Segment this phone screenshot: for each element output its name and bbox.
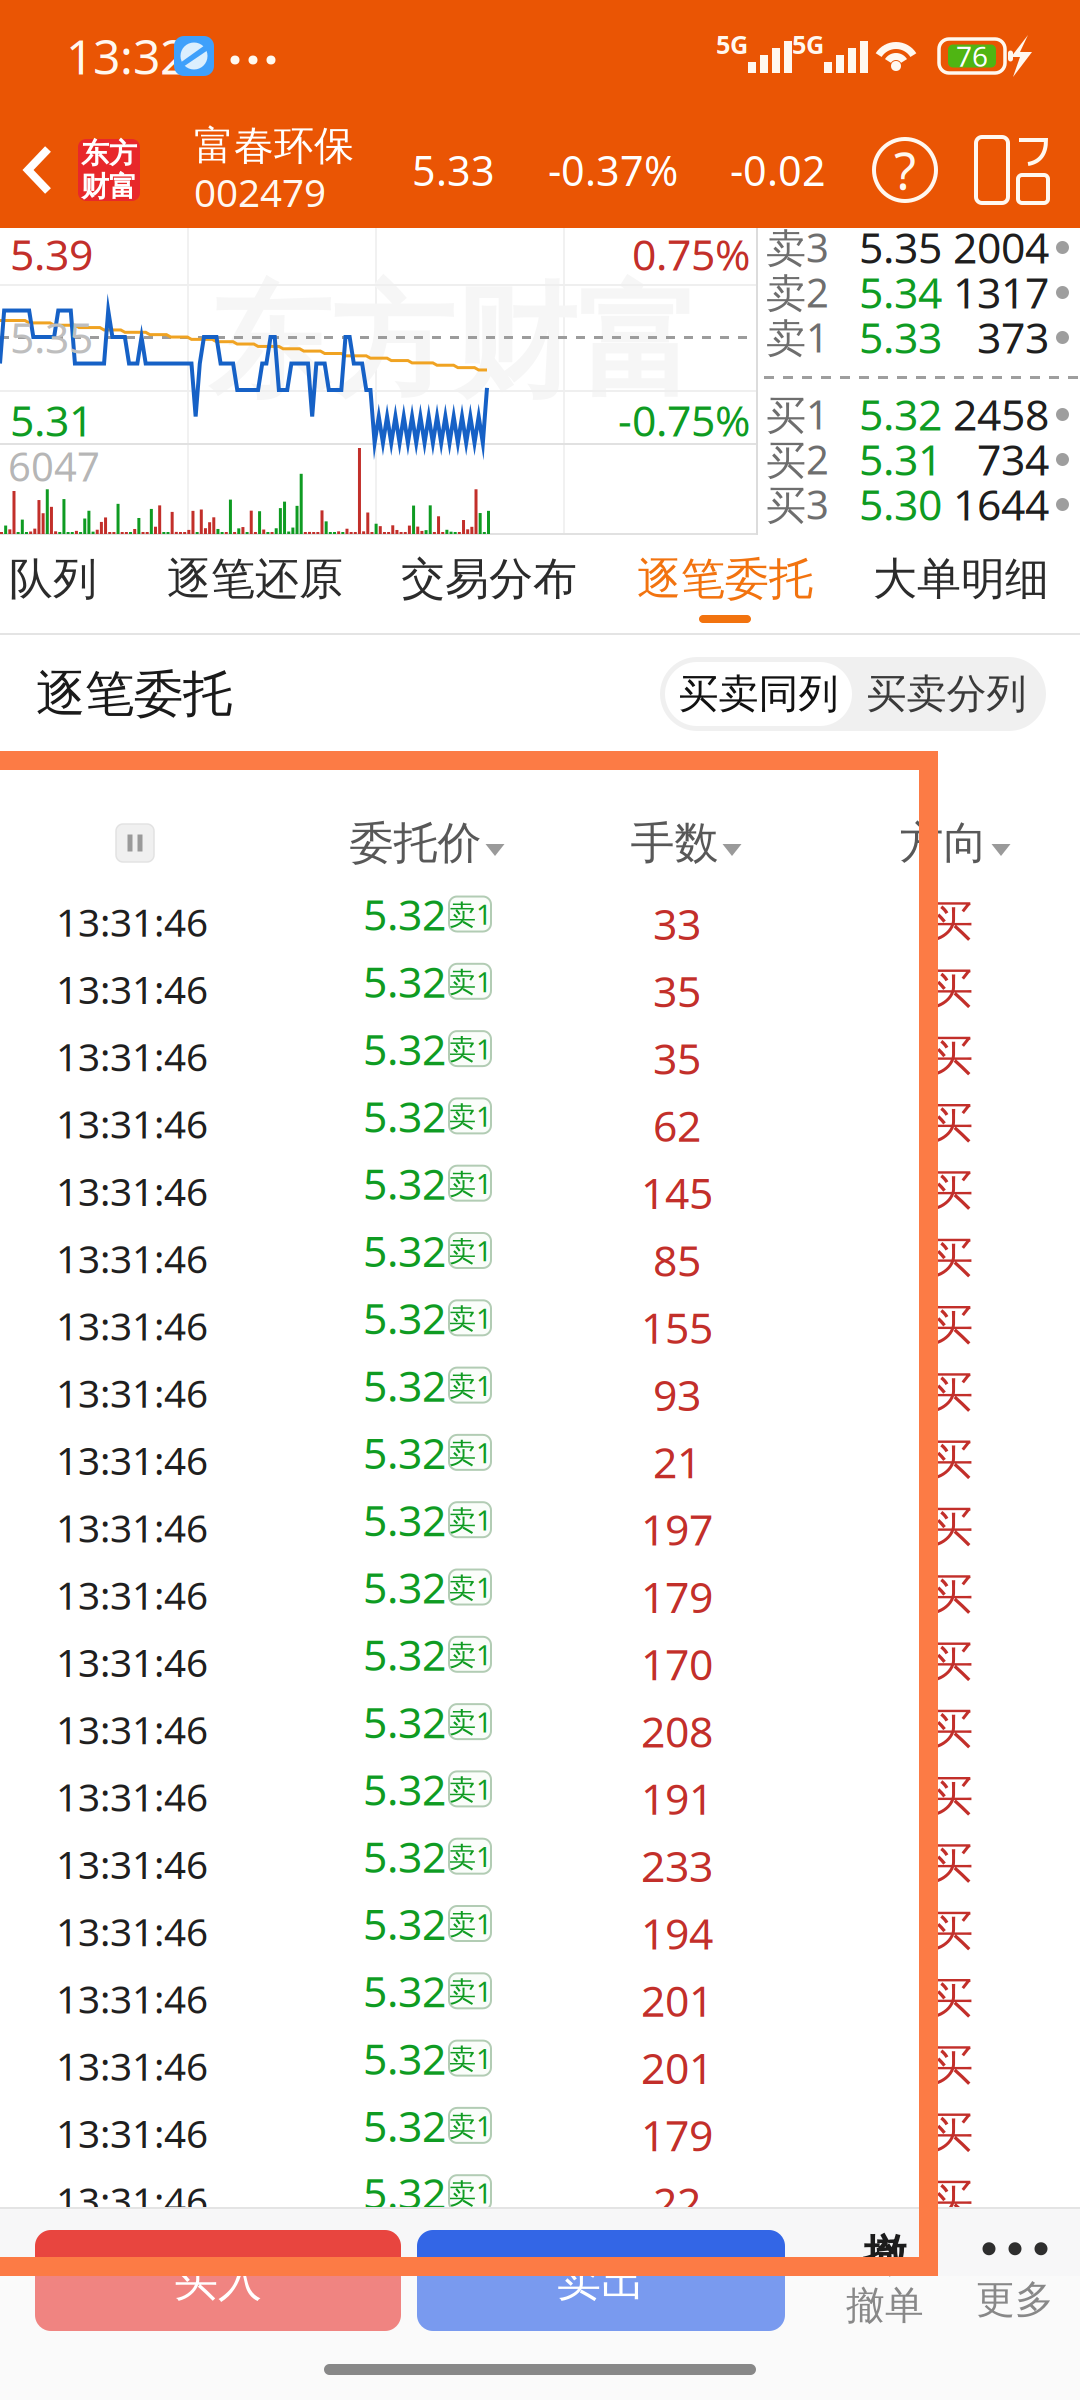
staticText: 买: [930, 1837, 973, 1890]
staticText: 更多: [976, 2276, 1054, 2323]
staticText: 13:31:46: [56, 1636, 208, 1688]
staticText: 5.32: [363, 1289, 446, 1346]
staticText: 逐笔还原: [167, 552, 343, 606]
staticText: 卖1: [448, 1568, 492, 1606]
staticText: 买: [930, 1703, 973, 1755]
staticText: 逐笔委托: [36, 664, 232, 724]
staticText: 22: [653, 2174, 701, 2230]
button[interactable]: 扫一扫: [0, 112, 96, 228]
staticText: 5.32: [363, 1559, 446, 1615]
button[interactable]: 买入: [0, 2207, 366, 2308]
staticText: 13:31:46: [56, 1232, 208, 1284]
staticText: 13:31:46: [56, 1367, 208, 1418]
staticText: 撤单: [846, 2282, 924, 2329]
staticText: 5.33: [859, 309, 942, 365]
button[interactable]: 委托价: [0, 820, 240, 866]
staticText: 13:31:46: [56, 1973, 208, 2024]
staticText: 13:32: [66, 24, 187, 88]
button[interactable]: 撤: [0, 2207, 140, 2312]
staticText: 5.31: [859, 431, 942, 487]
staticText: 5.32: [363, 1155, 446, 1212]
staticText: 5.32: [363, 1357, 446, 1413]
staticText: 5.32: [363, 1020, 446, 1077]
staticText: 5.32: [363, 1895, 446, 1952]
staticText: 东方: [81, 136, 137, 170]
staticText: 5.39: [10, 226, 93, 282]
staticText: 233: [641, 1837, 713, 1894]
staticText: 买: [930, 895, 973, 947]
button[interactable]: 队列: [0, 535, 186, 633]
button[interactable]: 大单明细: [0, 535, 186, 633]
staticText: 33: [653, 895, 701, 952]
staticText: 2458: [953, 386, 1049, 442]
staticText: 5.32: [363, 1828, 446, 1885]
staticText: 买: [930, 962, 973, 1015]
staticText: 5.32: [363, 2164, 446, 2221]
staticText: 卖1: [448, 1097, 492, 1134]
staticText: 6047: [8, 439, 100, 492]
staticText: 买: [930, 1770, 973, 1822]
staticText: 卖1: [448, 1232, 492, 1269]
staticText: 卖1: [448, 895, 492, 933]
staticText: 卖1: [766, 310, 829, 363]
staticText: 队列: [9, 552, 97, 606]
staticText: 卖1: [448, 1905, 492, 1942]
button[interactable]: 更多: [0, 2207, 140, 2312]
staticText: 201: [641, 2039, 713, 2096]
staticText: 5.32: [363, 1088, 446, 1144]
staticText: 5.32: [363, 2030, 446, 2086]
staticText: 5.32: [363, 886, 446, 942]
staticText: 35: [653, 962, 701, 1019]
staticText: 179: [641, 2106, 713, 2163]
staticText: 买: [930, 1231, 973, 1284]
button[interactable]: 交易分布: [0, 535, 186, 633]
staticText: 13:31:46: [56, 1434, 208, 1486]
staticText: 买: [930, 1904, 973, 1957]
staticText: 13:31:46: [56, 2175, 208, 2226]
button[interactable]: 帮助: [0, 112, 90, 228]
button[interactable]: 买卖同列: [665, 662, 852, 726]
staticText: 62: [653, 1097, 701, 1154]
staticText: 逐笔委托: [637, 552, 813, 606]
staticText: 买: [930, 2106, 973, 2159]
button[interactable]: 买卖分列: [852, 662, 1041, 726]
staticText: 卖1: [448, 2039, 492, 2077]
staticText: 5.32: [363, 1626, 446, 1683]
button[interactable]: 逐笔委托: [0, 535, 186, 633]
staticText: 191: [641, 1770, 713, 1827]
staticText: 交易分布: [401, 552, 577, 606]
staticText: 13:31:46: [56, 963, 208, 1015]
staticText: 85: [653, 1231, 701, 1288]
staticText: 买: [930, 1635, 973, 1688]
staticText: 13:31:46: [56, 2040, 208, 2091]
staticText: 委托价: [349, 816, 481, 870]
staticText: 手数: [630, 816, 718, 870]
button[interactable]: 暂停: [0, 820, 160, 866]
staticText: 卖1: [448, 1501, 492, 1538]
staticText: 21: [653, 1433, 701, 1490]
staticText: 5.32: [363, 1761, 446, 1817]
button[interactable]: 方向: [0, 820, 240, 866]
staticText: 买: [930, 2039, 973, 2091]
button[interactable]: 手数: [0, 820, 240, 866]
button[interactable]: 逐笔还原: [0, 535, 186, 633]
staticText: 5.31: [10, 392, 93, 448]
staticText: 1317: [953, 264, 1049, 320]
staticText: 买: [930, 1299, 973, 1351]
staticText: 13:31:46: [56, 1165, 208, 1216]
staticText: 5.32: [363, 1693, 446, 1750]
staticText: 买: [930, 1568, 973, 1620]
staticText: 撤: [863, 2229, 906, 2282]
staticText: 5.32: [363, 953, 446, 1010]
button[interactable]: 返回: [0, 112, 86, 228]
staticText: 13:31:46: [56, 1502, 208, 1553]
staticText: 194: [641, 1904, 713, 1961]
staticText: 卖1: [448, 1030, 492, 1067]
staticText: 卖1: [448, 2107, 492, 2144]
staticText: 卖1: [448, 1972, 492, 2009]
button[interactable]: 卖出: [0, 2207, 368, 2308]
staticText: 卖1: [448, 963, 492, 1000]
staticText: 0.75%: [632, 226, 750, 282]
staticText: 卖1: [448, 1703, 492, 1740]
staticText: ?: [894, 136, 916, 204]
